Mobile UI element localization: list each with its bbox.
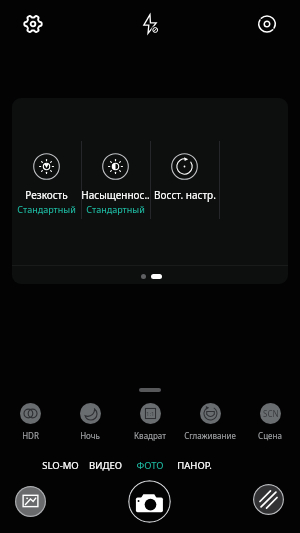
staticText: Квадрат: [134, 430, 166, 441]
button[interactable]: Сглаживание: [180, 403, 240, 441]
staticText: Сглаживание: [184, 430, 236, 441]
button[interactable]: ФОТО: [126, 456, 174, 474]
staticText: Сцена: [258, 430, 282, 441]
staticText: 1:1: [146, 410, 155, 418]
staticText: Стандартный: [86, 203, 145, 215]
staticText: SLO-MO: [42, 459, 79, 472]
button[interactable]: Take photo: [128, 480, 171, 523]
button[interactable]: Резкость: [12, 98, 81, 284]
staticText: SCN: [263, 408, 279, 419]
staticText: ВИДЕО: [89, 459, 122, 472]
button[interactable]: SLO-MO: [36, 456, 84, 474]
staticText: ФОТО: [136, 459, 164, 472]
button[interactable]: Flash off: [126, 0, 174, 48]
staticText: Резкость: [25, 188, 68, 202]
button[interactable]: 1:1: [120, 403, 180, 441]
button[interactable]: SCN: [240, 403, 300, 441]
staticText: Восст. настр.: [154, 188, 216, 202]
staticText: Ночь: [80, 430, 100, 441]
staticText: ПАНОР.: [177, 459, 212, 472]
button[interactable]: Насыщеннос...: [81, 98, 150, 284]
staticText: HDR: [22, 430, 39, 441]
staticText: Насыщеннос...: [81, 188, 150, 202]
button[interactable]: Filters: [253, 484, 284, 515]
button[interactable]: Восст. настр.: [150, 98, 219, 284]
button[interactable]: Ночь: [60, 403, 120, 441]
button[interactable]: Gallery: [15, 486, 46, 517]
button[interactable]: Timer: [243, 0, 291, 48]
button[interactable]: HDR: [0, 403, 60, 441]
button[interactable]: ПАНОР.: [170, 456, 218, 474]
staticText: Стандартный: [17, 203, 76, 215]
button[interactable]: ВИДЕО: [81, 456, 129, 474]
button[interactable]: Settings: [9, 0, 57, 48]
